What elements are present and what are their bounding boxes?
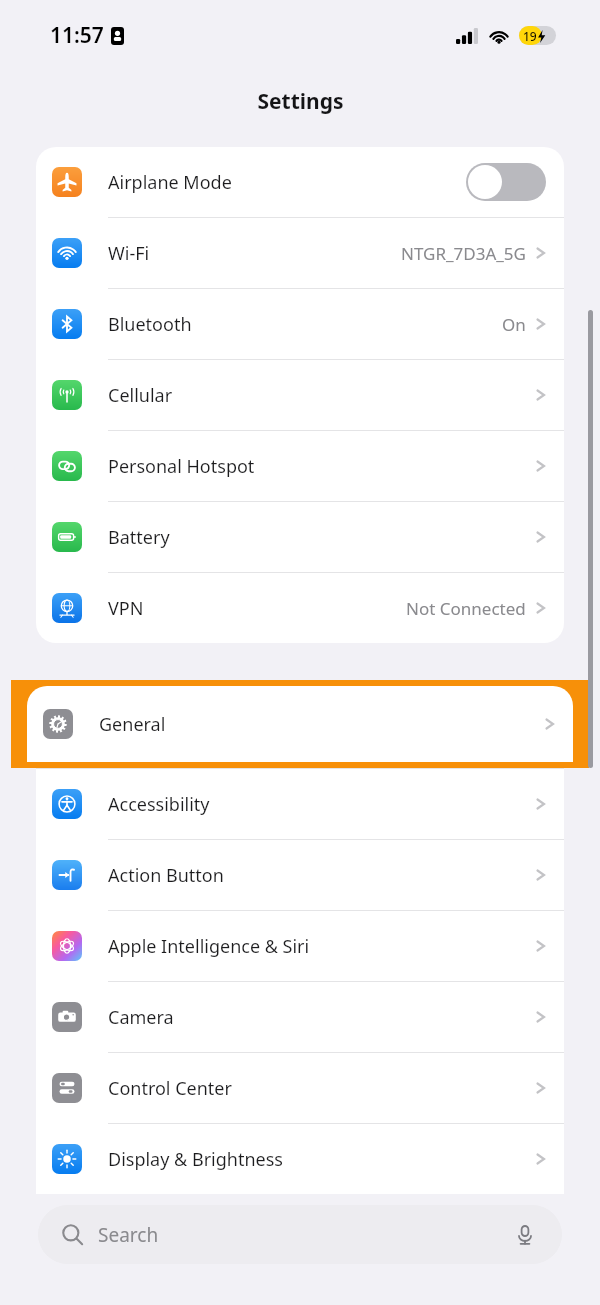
staticText: VPN (108, 596, 144, 621)
staticText: Search (98, 1222, 159, 1248)
button[interactable]: Camera (36, 982, 564, 1052)
staticText: General (99, 712, 166, 737)
button[interactable]: Control Center (36, 1053, 564, 1123)
button[interactable]: Action Button (36, 840, 564, 910)
button[interactable]: Wi-Fi (36, 218, 564, 288)
staticText: Airplane Mode (108, 170, 232, 195)
staticText: Cellular (108, 383, 173, 408)
staticText: NTGR_7D3A_5G (401, 242, 526, 265)
button[interactable]: VPN (36, 573, 564, 643)
button[interactable]: Apple Intelligence & Siri (36, 911, 564, 981)
staticText: Apple Intelligence & Siri (108, 934, 310, 959)
staticText: Settings (257, 87, 344, 116)
staticText: Camera (108, 1005, 174, 1030)
button[interactable]: Airplane Mode toggle (466, 163, 546, 201)
button[interactable]: General (27, 686, 573, 762)
staticText: Bluetooth (108, 312, 192, 337)
staticText: Display & Brightness (108, 1147, 283, 1172)
staticText: On (502, 313, 526, 336)
button[interactable]: Cellular (36, 360, 564, 430)
staticText: 19 (523, 28, 537, 44)
button[interactable]: Personal Hotspot (36, 431, 564, 501)
staticText: Action Button (108, 863, 224, 888)
staticText: Personal Hotspot (108, 454, 255, 479)
button[interactable]: Accessibility (36, 769, 564, 839)
button[interactable]: Display & Brightness (36, 1124, 564, 1194)
staticText: Control Center (108, 1076, 232, 1101)
staticText: Accessibility (108, 792, 210, 817)
staticText: Wi-Fi (108, 241, 150, 266)
button[interactable]: Battery (36, 502, 564, 572)
staticText: Battery (108, 525, 170, 550)
staticText: 11:57 (50, 21, 104, 50)
button[interactable]: Airplane Mode (36, 147, 564, 217)
button[interactable]: Voice search (512, 1222, 538, 1248)
button[interactable]: Bluetooth (36, 289, 564, 359)
button[interactable]: Search (38, 1205, 562, 1264)
staticText: Not Connected (406, 597, 526, 620)
